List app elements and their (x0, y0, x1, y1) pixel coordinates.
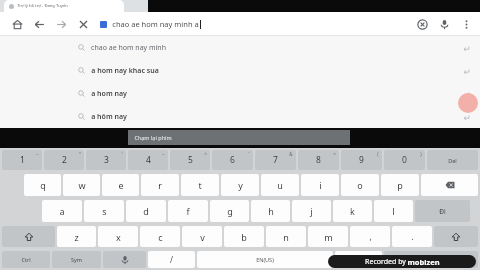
staticText: a hom nay (91, 89, 127, 99)
staticText: 8 (316, 154, 321, 166)
button[interactable]: f (168, 200, 208, 222)
staticText: u (277, 179, 283, 191)
button[interactable]: Đi (415, 200, 470, 222)
staticText: Trợ lý hỗ trợ - Đang Tuyển (17, 3, 68, 9)
button[interactable]: a hom nay (0, 82, 480, 105)
button[interactable]: 1 (2, 150, 42, 170)
staticText: o (357, 179, 363, 191)
button[interactable] (384, 251, 478, 268)
button[interactable]: . (392, 226, 432, 247)
button[interactable]: q (24, 174, 61, 196)
button[interactable]: Sym (52, 251, 101, 268)
button[interactable]: , (350, 226, 390, 247)
button[interactable]: 0 (384, 150, 425, 170)
staticText: x (116, 231, 121, 243)
button[interactable]: m (308, 226, 348, 247)
button[interactable]: 7 (255, 150, 296, 170)
button[interactable]: Voice input (103, 251, 146, 268)
button[interactable]: z (57, 226, 96, 247)
button[interactable]: j (292, 200, 331, 222)
staticText: d (143, 205, 149, 217)
button[interactable]: n (266, 226, 306, 247)
button[interactable]: Shift (2, 226, 55, 247)
button[interactable]: More options (455, 13, 477, 35)
button[interactable]: w (63, 174, 100, 196)
staticText: 4 (146, 154, 151, 166)
button[interactable]: Ctrl (2, 251, 50, 268)
button[interactable]: k (333, 200, 372, 222)
staticText: 3 (104, 154, 109, 166)
button[interactable]: i (301, 174, 339, 196)
button[interactable]: b (224, 226, 264, 247)
button[interactable]: s (84, 200, 124, 222)
staticText: Sym (71, 256, 82, 263)
staticText: p (397, 179, 403, 191)
staticText: q (40, 179, 46, 191)
button[interactable]: Account (458, 93, 478, 113)
button[interactable]: x (98, 226, 138, 247)
staticText: & (289, 151, 293, 157)
staticText: w (78, 179, 86, 191)
button[interactable]: e (102, 174, 139, 196)
button[interactable]: a hôm nay (0, 105, 480, 128)
staticText: j (310, 205, 313, 217)
button[interactable]: Chạm lại phím (128, 130, 350, 145)
button[interactable]: p (381, 174, 419, 196)
button[interactable]: Insert suggestion (458, 63, 474, 79)
staticText: n (283, 231, 289, 243)
button[interactable]: a hom nay khac sua (0, 59, 480, 82)
button[interactable]: u (261, 174, 299, 196)
button[interactable]: 4 (128, 150, 168, 170)
button[interactable]: a (42, 200, 82, 222)
button[interactable]: Forward (50, 13, 72, 35)
staticText: chao ae hom nay minh a (112, 19, 199, 29)
button[interactable]: chao ae hom nay minh a (94, 16, 411, 32)
staticText: a hôm nay (91, 112, 127, 122)
button[interactable]: Clear (411, 13, 433, 35)
staticText: 9 (359, 154, 364, 166)
button[interactable]: Insert suggestion (458, 86, 474, 102)
button[interactable]: / (148, 251, 195, 268)
button[interactable]: Backspace (421, 174, 478, 196)
staticText: 7 (273, 154, 278, 166)
staticText: g (227, 205, 233, 217)
staticText: f (186, 205, 190, 217)
button[interactable]: y (221, 174, 259, 196)
staticText: ^ (333, 151, 336, 157)
button[interactable]: 6 (212, 150, 253, 170)
button[interactable]: Trợ lý hỗ trợ - Đang Tuyển (4, 0, 124, 12)
staticText: y (238, 179, 243, 191)
button[interactable]: 2 (44, 150, 84, 170)
button[interactable]: Insert suggestion (458, 40, 474, 56)
button[interactable]: v (182, 226, 222, 247)
button[interactable]: c (140, 226, 180, 247)
button[interactable]: Insert suggestion (458, 109, 474, 125)
staticText: 5 (188, 154, 193, 166)
button[interactable]: 8 (298, 150, 339, 170)
button[interactable]: Shift (434, 226, 478, 247)
button[interactable]: Home (6, 13, 28, 35)
button[interactable]: chao ae hom nay minh (0, 36, 480, 59)
button[interactable]: d (126, 200, 166, 222)
button[interactable]: l (374, 200, 413, 222)
button[interactable]: 9 (341, 150, 382, 170)
staticText: / (170, 254, 173, 265)
staticText: a hom nay khac sua (91, 66, 159, 76)
button[interactable]: o (341, 174, 379, 196)
staticText: h (268, 205, 274, 217)
button[interactable]: g (210, 200, 249, 222)
button[interactable]: EN(US) (197, 251, 333, 268)
button[interactable]: 5 (170, 150, 210, 170)
button[interactable]: Voice search (433, 13, 455, 35)
button[interactable]: Stop loading (72, 13, 94, 35)
button[interactable]: h (251, 200, 290, 222)
staticText: ~ (36, 151, 39, 157)
button[interactable]: Back (28, 13, 50, 35)
button[interactable]: t (181, 174, 219, 196)
button[interactable]: . (335, 251, 382, 268)
staticText: l (392, 205, 395, 217)
button[interactable]: 3 (86, 150, 126, 170)
button[interactable]: Del (427, 150, 478, 170)
staticText: mobizen (407, 257, 440, 267)
button[interactable]: r (141, 174, 179, 196)
